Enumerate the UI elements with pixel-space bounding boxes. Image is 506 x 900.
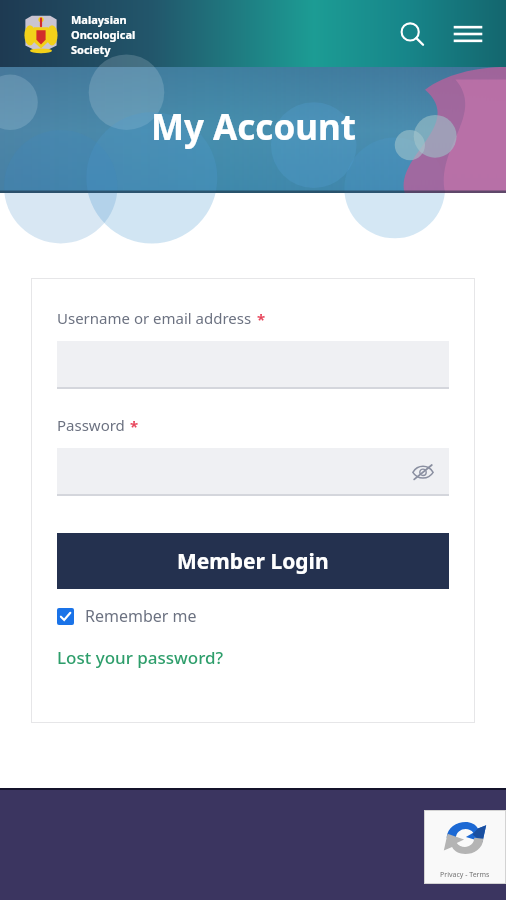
staticText: My Account [151,103,356,151]
staticText: Remember me [85,605,197,627]
staticText: Oncological [71,27,136,42]
button[interactable]: Lost your password? [57,646,224,669]
staticText: Lost your password? [57,646,224,669]
staticText: * [257,309,266,329]
staticText: Privacy - Terms [440,870,490,880]
button[interactable]: Remember me [57,605,197,627]
button[interactable]: Show password [409,458,437,486]
button[interactable]: Malaysian [18,10,136,58]
staticText: Malaysian [71,12,127,27]
staticText: Member Login [177,547,329,576]
staticText: * [130,416,139,436]
button[interactable]: Menu [447,13,489,55]
staticText: Society [71,42,111,57]
button[interactable]: Show password [57,448,449,496]
button[interactable]: reCAPTCHA privacy and terms [424,810,506,884]
button[interactable]: Member Login [57,533,449,589]
staticText: Password [57,415,125,435]
button[interactable] [57,341,449,389]
button[interactable]: Search [392,14,432,54]
staticText: Username or email address [57,308,252,328]
